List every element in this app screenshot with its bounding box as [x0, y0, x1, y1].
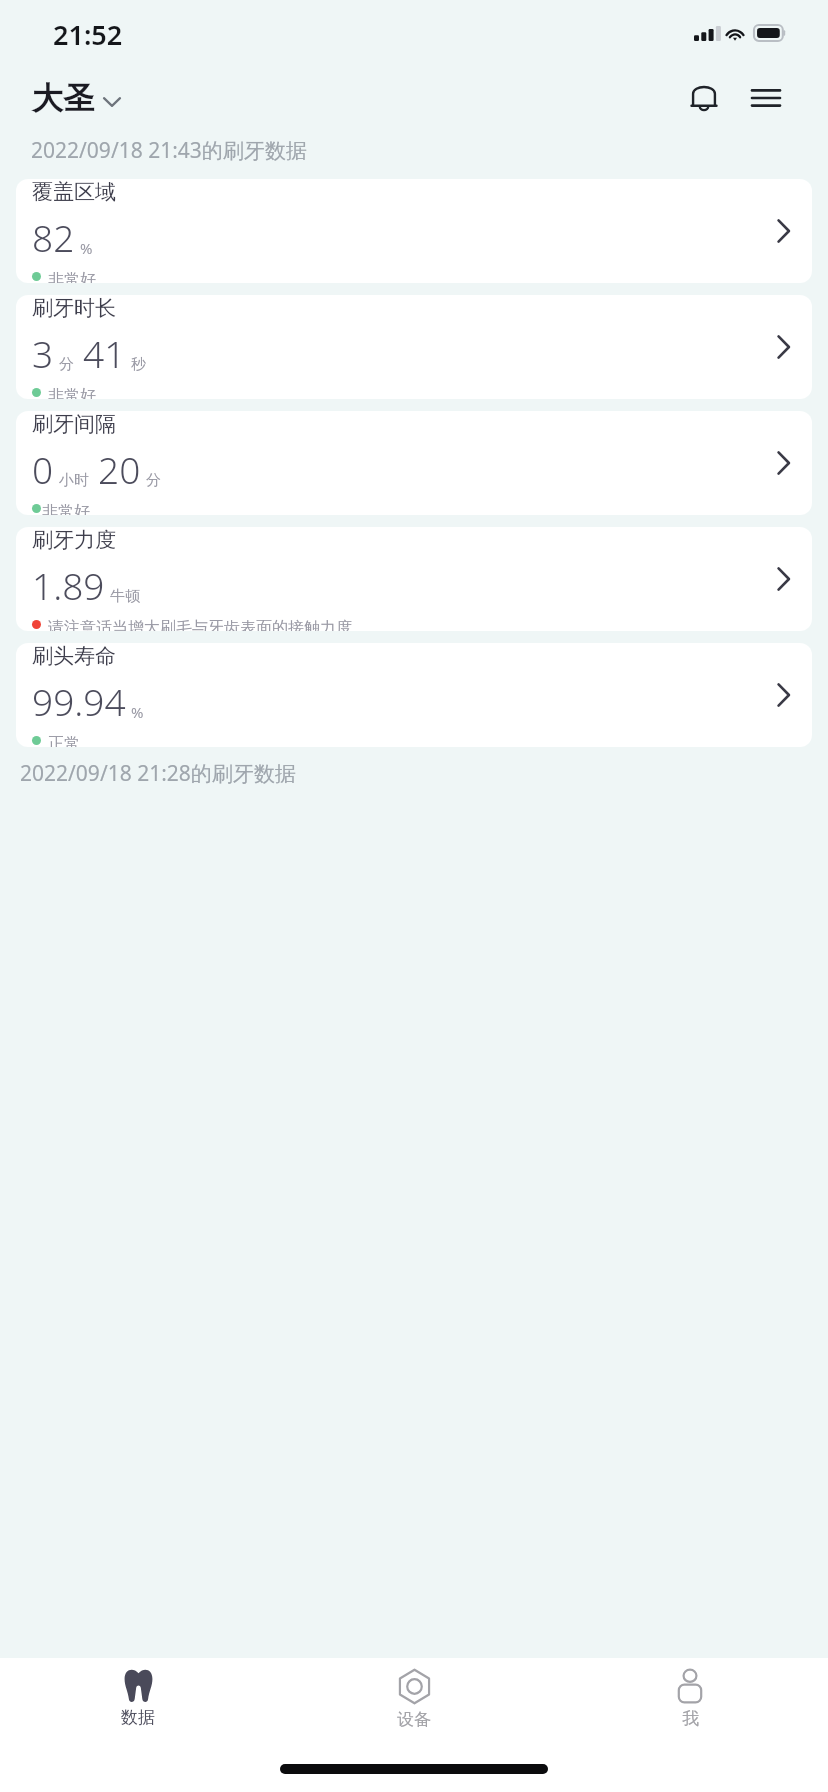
staticText: 设备 — [397, 1709, 431, 1730]
button[interactable]: 刷牙力度 — [16, 527, 812, 631]
staticText: 非常好 — [42, 502, 90, 515]
staticText: 请注意适当增大刷毛与牙齿表面的接触力度 — [48, 618, 352, 631]
staticText: 2022/09/18 21:43的刷牙数据 — [31, 136, 307, 165]
button[interactable]: 设备 — [276, 1658, 552, 1753]
staticText: 82 — [32, 212, 75, 262]
button[interactable]: 覆盖区域 — [16, 179, 812, 283]
staticText: 我 — [682, 1708, 699, 1729]
button[interactable]: 数据 — [0, 1658, 276, 1753]
button[interactable]: 大圣 — [28, 75, 124, 122]
staticText: 非常好 — [48, 270, 96, 283]
button[interactable]: Notifications — [678, 72, 730, 124]
staticText: 小时 — [59, 471, 89, 490]
staticText: 非常好 — [48, 386, 96, 399]
staticText: 覆盖区域 — [32, 179, 116, 205]
staticText: % — [80, 238, 93, 258]
staticText: 99.94 — [32, 676, 126, 726]
button[interactable]: 我 — [552, 1658, 828, 1753]
staticText: 41 — [83, 328, 126, 378]
staticText: 数据 — [121, 1707, 155, 1728]
staticText: 刷头寿命 — [32, 643, 116, 669]
staticText: 1.89 — [32, 560, 105, 610]
staticText: 刷牙时长 — [32, 295, 116, 321]
staticText: 3 — [32, 328, 54, 378]
staticText: 20 — [98, 444, 141, 494]
staticText: 0 — [32, 444, 54, 494]
staticText: 刷牙间隔 — [32, 411, 116, 437]
staticText: 大圣 — [32, 79, 94, 118]
staticText: 21:52 — [53, 16, 123, 53]
staticText: 分 — [59, 355, 74, 374]
button[interactable]: 刷牙时长 — [16, 295, 812, 399]
staticText: 秒 — [131, 355, 146, 374]
staticText: 2022/09/18 21:28的刷牙数据 — [20, 759, 296, 788]
button[interactable]: Menu — [740, 72, 792, 124]
staticText: 正常 — [48, 734, 80, 747]
staticText: 分 — [146, 471, 161, 490]
button[interactable]: 刷头寿命 — [16, 643, 812, 747]
staticText: 刷牙力度 — [32, 527, 116, 553]
button[interactable]: 刷牙间隔 — [16, 411, 812, 515]
staticText: 牛顿 — [110, 587, 140, 606]
staticText: % — [131, 702, 144, 722]
